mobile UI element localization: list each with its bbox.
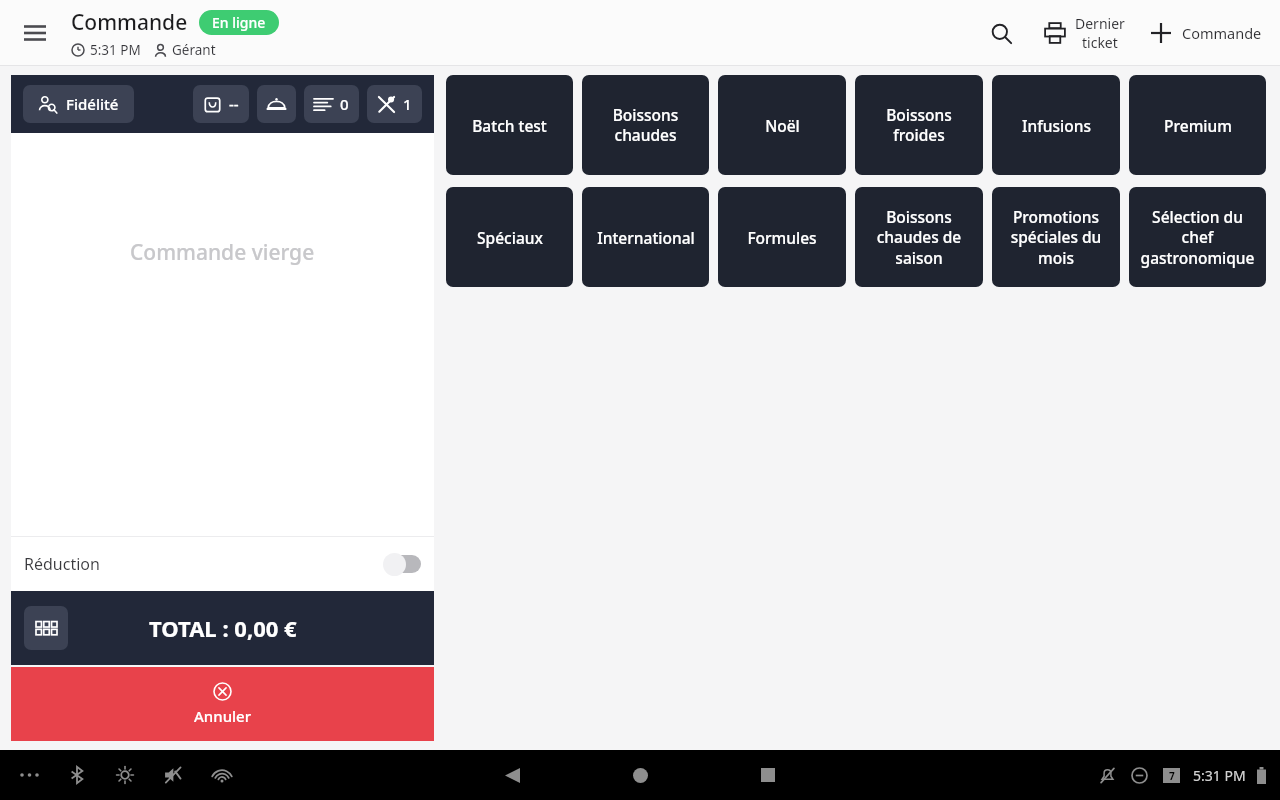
staticText: Annuler: [194, 706, 252, 726]
button[interactable]: Commande: [1145, 13, 1266, 53]
button[interactable]: Service: [257, 85, 296, 123]
button[interactable]: Boissons chaudes de saison: [855, 187, 983, 287]
button[interactable]: Menu: [13, 11, 57, 55]
staticText: International: [597, 227, 695, 248]
button[interactable]: Infusions: [992, 75, 1120, 175]
staticText: Promotions spéciales du mois: [998, 206, 1114, 269]
button[interactable]: Rechercher: [978, 10, 1024, 56]
button[interactable]: Accueil: [614, 750, 666, 800]
staticText: 5:31 PM: [1193, 766, 1246, 785]
button[interactable]: Spéciaux: [446, 187, 573, 287]
staticText: Sélection du chef gastronomique: [1135, 206, 1260, 269]
staticText: Commande: [71, 8, 188, 37]
staticText: Spéciaux: [477, 227, 543, 248]
staticText: Gérant: [172, 41, 216, 59]
staticText: En ligne: [212, 13, 266, 32]
staticText: 7: [1169, 769, 1175, 783]
button[interactable]: International: [582, 187, 709, 287]
button[interactable]: Sacs: [193, 85, 249, 123]
button[interactable]: Noël: [718, 75, 846, 175]
staticText: Formules: [747, 227, 817, 248]
staticText: ticket: [1082, 33, 1118, 52]
button[interactable]: Formules: [718, 187, 846, 287]
button[interactable]: Applications récentes: [742, 750, 794, 800]
staticText: Commande: [1182, 23, 1262, 43]
button[interactable]: Fidélité: [23, 85, 134, 123]
staticText: Dernier: [1075, 14, 1125, 33]
staticText: 1: [403, 94, 412, 114]
staticText: 0: [340, 94, 349, 114]
button[interactable]: Clavier numérique: [11, 591, 434, 665]
staticText: 5:31 PM: [90, 41, 141, 59]
staticText: Commande vierge: [130, 238, 315, 267]
button[interactable]: Sélection du chef gastronomique: [1129, 187, 1266, 287]
button[interactable]: Boissons chaudes: [582, 75, 709, 175]
staticText: Boissons froides: [861, 104, 977, 146]
staticText: Noël: [765, 115, 800, 136]
button[interactable]: Premium: [1129, 75, 1266, 175]
staticText: Infusions: [1022, 115, 1091, 136]
staticText: Boissons chaudes de saison: [861, 206, 977, 269]
staticText: Premium: [1164, 115, 1232, 136]
button[interactable]: Réduction: [11, 537, 434, 591]
staticText: --: [229, 94, 239, 114]
button[interactable]: Notes: [304, 85, 359, 123]
button[interactable]: Promotions spéciales du mois: [992, 187, 1120, 287]
button[interactable]: Annuler: [11, 667, 434, 741]
button[interactable]: Retour: [486, 750, 538, 800]
button[interactable]: Dernier: [1040, 6, 1129, 60]
button[interactable]: Clavier numérique: [24, 606, 68, 650]
button[interactable]: Boissons froides: [855, 75, 983, 175]
staticText: Réduction: [24, 553, 100, 575]
button[interactable]: En ligne: [199, 10, 279, 35]
button[interactable]: Couverts: [367, 85, 422, 123]
staticText: Fidélité: [66, 94, 119, 114]
button[interactable]: Batch test: [446, 75, 573, 175]
staticText: Batch test: [472, 115, 547, 136]
staticText: Boissons chaudes: [588, 104, 703, 146]
staticText: TOTAL : 0,00 €: [149, 613, 297, 643]
